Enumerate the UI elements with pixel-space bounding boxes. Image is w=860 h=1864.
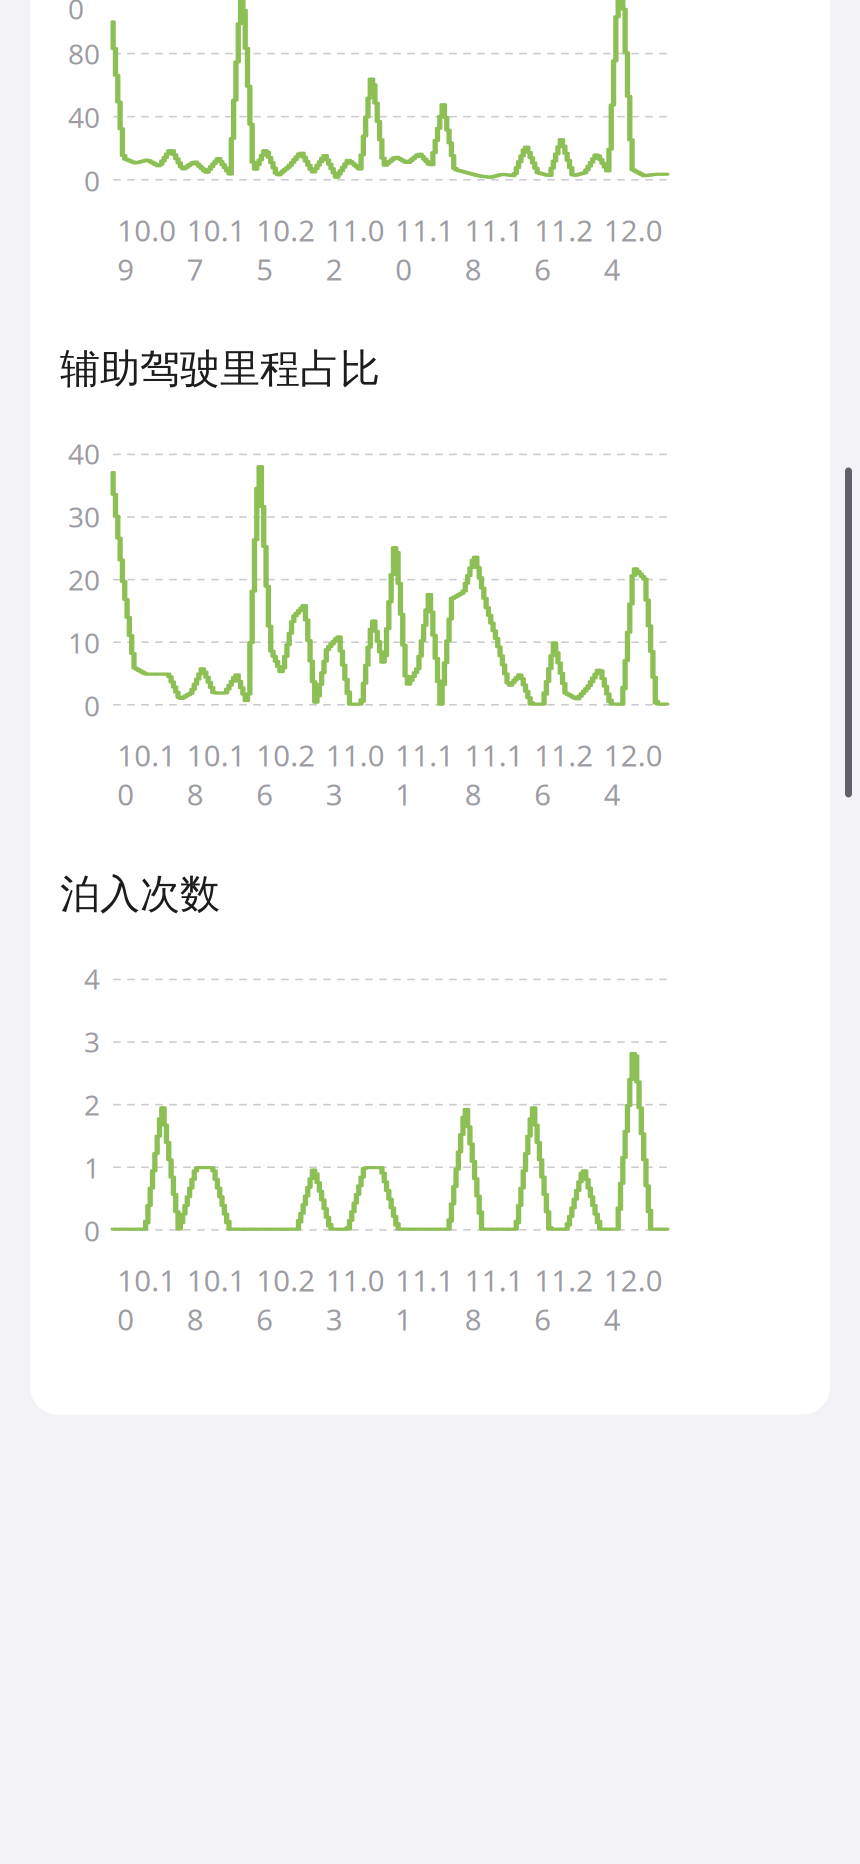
staticText: 30: [68, 498, 100, 535]
staticText: 11.02: [326, 211, 385, 288]
staticText: 11.18: [465, 211, 524, 288]
staticText: 11.10: [395, 211, 454, 288]
staticText: 10.26: [256, 1261, 315, 1339]
staticText: 12.04: [604, 1261, 663, 1339]
staticText: 80: [68, 35, 100, 72]
staticText: 12.04: [604, 211, 663, 288]
staticText: 3: [84, 1023, 100, 1060]
staticText: 11.26: [534, 1261, 593, 1339]
staticText: 10.18: [187, 1261, 246, 1339]
staticText: 2: [84, 1086, 100, 1123]
staticText: 辅助驾驶里程占比: [60, 344, 380, 394]
staticText: 泊入次数: [60, 869, 220, 919]
staticText: 11.11: [395, 1261, 454, 1339]
staticText: 10.18: [187, 736, 246, 813]
staticText: 1: [84, 1149, 100, 1186]
staticText: 10.25: [256, 211, 315, 288]
staticText: 11.03: [326, 1261, 385, 1339]
staticText: 12.04: [604, 736, 663, 813]
staticText: 11.11: [395, 736, 454, 813]
staticText: 120: [68, 0, 100, 27]
staticText: 11.26: [534, 211, 593, 288]
staticText: 0: [84, 162, 100, 199]
staticText: 4: [84, 960, 100, 997]
staticText: 10.10: [117, 1261, 176, 1339]
staticText: 11.18: [465, 1261, 524, 1339]
staticText: 11.18: [465, 736, 524, 813]
staticText: 40: [68, 98, 100, 136]
staticText: 10.26: [256, 736, 315, 813]
staticText: 10.10: [117, 736, 176, 813]
staticText: 0: [84, 687, 100, 724]
staticText: 40: [68, 435, 100, 472]
staticText: 10: [68, 624, 100, 661]
staticText: 11.26: [534, 736, 593, 813]
staticText: 0: [84, 1212, 100, 1249]
staticText: 10.09: [117, 211, 176, 288]
staticText: 11.03: [326, 736, 385, 813]
staticText: 10.17: [187, 211, 246, 288]
staticText: 20: [68, 561, 100, 598]
